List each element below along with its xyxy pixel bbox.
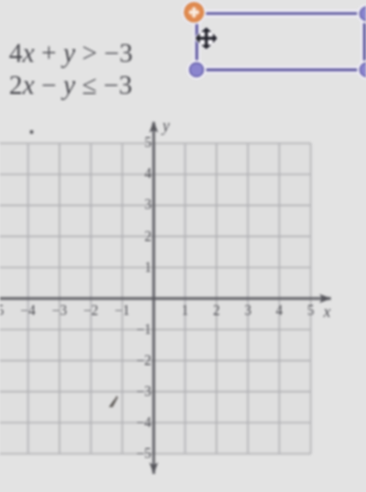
button[interactable]: Resize handle top right bbox=[355, 2, 366, 25]
button[interactable]: Resize handle bottom right bbox=[355, 58, 366, 81]
button[interactable]: Resize handle bottom left bbox=[185, 58, 208, 81]
button[interactable]: Close selection bbox=[182, 0, 207, 25]
button[interactable]: Move selection bbox=[194, 26, 219, 51]
